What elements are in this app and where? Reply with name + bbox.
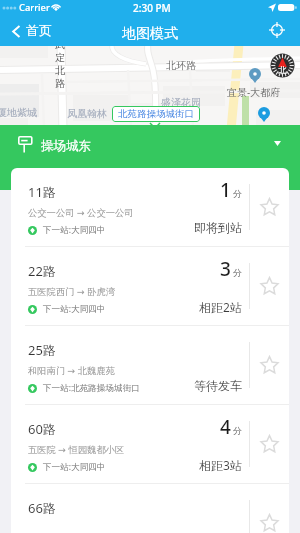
staticText: 盛泽花园 bbox=[161, 96, 201, 109]
staticText: 1 bbox=[220, 177, 231, 203]
button[interactable]: 11路 bbox=[11, 168, 289, 246]
staticText: 相距3站 bbox=[199, 457, 242, 473]
staticText: 北 bbox=[55, 64, 65, 77]
button[interactable]: 25路 bbox=[11, 326, 289, 404]
button[interactable]: 首页 bbox=[0, 20, 62, 46]
staticText: 凤凰翰林 bbox=[67, 107, 107, 120]
staticText: 公交一公司 → 公交一公司 bbox=[28, 206, 134, 219]
button[interactable]: Favorite bbox=[254, 168, 289, 246]
staticText: Carrier bbox=[19, 1, 50, 14]
staticText: 60路 bbox=[28, 420, 56, 438]
staticText: 五医院西门 → 卧虎湾 bbox=[28, 285, 115, 298]
staticText: 分 bbox=[233, 188, 242, 199]
staticText: 武 bbox=[55, 38, 65, 51]
staticText: 4 bbox=[220, 414, 231, 440]
staticText: 分 bbox=[233, 267, 242, 278]
button[interactable]: 66路 bbox=[11, 484, 289, 533]
staticText: 下一站:大同四中 bbox=[43, 224, 106, 236]
staticText: 25路 bbox=[28, 341, 56, 359]
button[interactable]: Compass bbox=[270, 53, 295, 78]
button[interactable]: 操场城东 bbox=[0, 125, 300, 168]
button[interactable]: Favorite bbox=[254, 326, 289, 404]
staticText: 下一站:大同四中 bbox=[43, 303, 106, 315]
staticText: 分 bbox=[233, 425, 242, 436]
button[interactable]: Favorite bbox=[254, 405, 289, 483]
staticText: 即将到站 bbox=[194, 220, 242, 235]
button[interactable]: Favorite bbox=[254, 247, 289, 325]
button[interactable]: 60路 bbox=[11, 405, 289, 483]
staticText: 北 bbox=[278, 65, 287, 76]
staticText: 22路 bbox=[28, 262, 56, 280]
staticText: 66路 bbox=[28, 499, 56, 517]
staticText: 11路 bbox=[28, 183, 56, 201]
button[interactable]: Locate me bbox=[264, 20, 290, 46]
staticText: 定 bbox=[55, 51, 65, 64]
staticText: 等待发车 bbox=[194, 378, 242, 393]
staticText: 操场城东 bbox=[41, 138, 91, 154]
staticText: 宜景-大都府 bbox=[227, 85, 281, 99]
button[interactable]: Favorite bbox=[254, 484, 289, 533]
staticText: 相距2站 bbox=[199, 299, 242, 315]
staticText: 厦地紫城 bbox=[0, 106, 37, 119]
staticText: 地图模式 bbox=[122, 25, 178, 43]
staticText: 2:30 PM bbox=[133, 1, 171, 15]
staticText: 3 bbox=[220, 256, 231, 282]
staticText: 路 bbox=[55, 77, 65, 90]
staticText: 北环路 bbox=[166, 59, 196, 72]
staticText: 北苑路操场城街口 bbox=[118, 108, 194, 120]
staticText: 和阳南门 → 北魏鹿苑 bbox=[28, 364, 115, 377]
staticText: 五医院 → 恒园魏都小区 bbox=[28, 443, 125, 456]
button[interactable]: 22路 bbox=[11, 247, 289, 325]
staticText: 下一站:大同四中 bbox=[43, 461, 106, 473]
staticText: 首页 bbox=[26, 22, 52, 38]
staticText: 下一站:北苑路操场城街口 bbox=[43, 382, 140, 394]
button[interactable]: 北苑路操场城街口 bbox=[112, 106, 200, 122]
